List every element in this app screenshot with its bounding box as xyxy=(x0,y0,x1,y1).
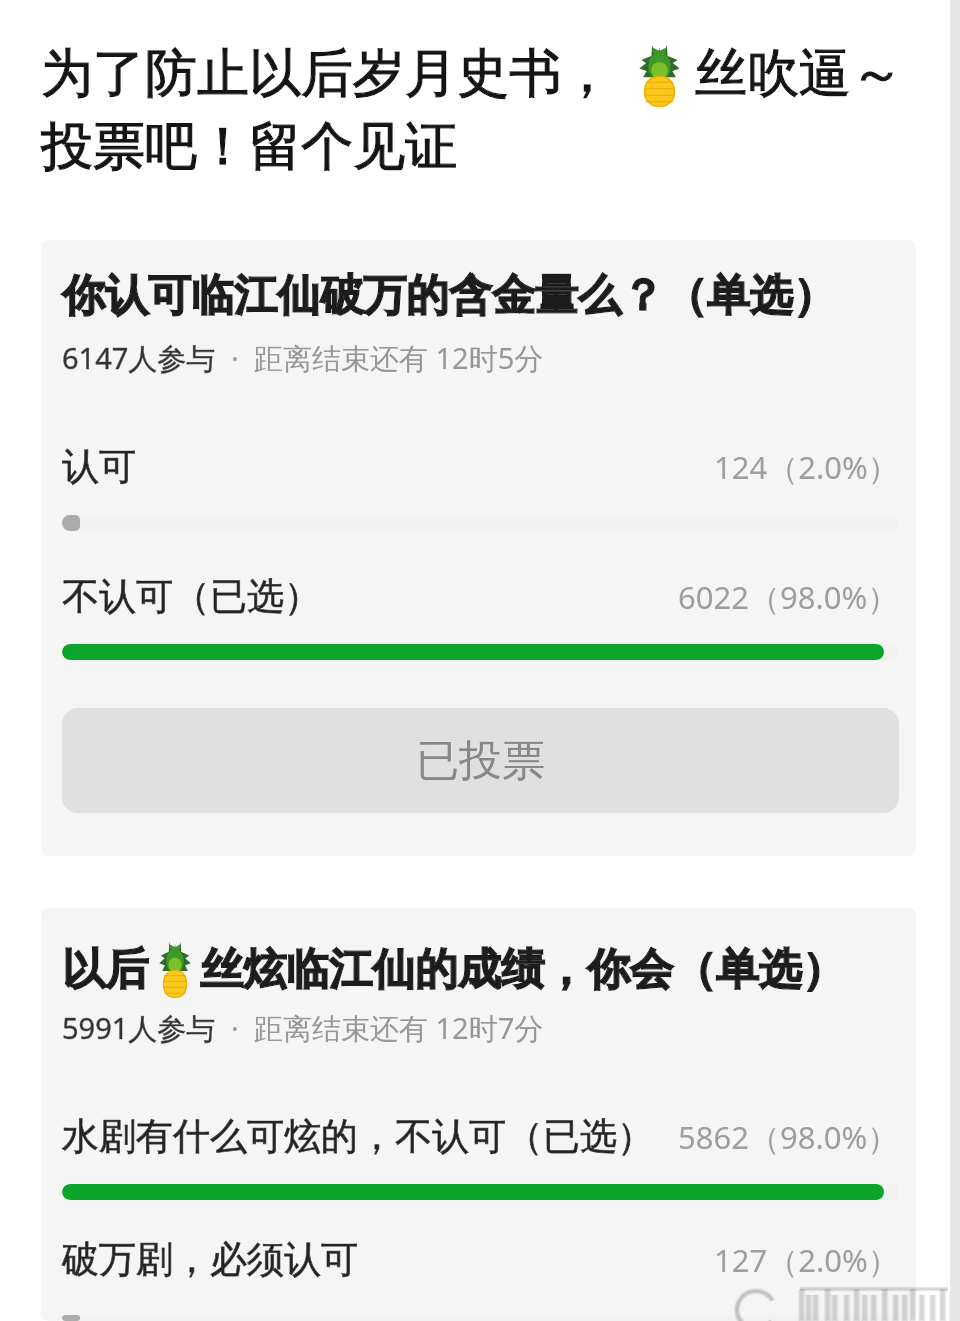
staticText: 6147人参与 xyxy=(62,338,216,378)
staticText: 不认可（已选） xyxy=(62,573,321,620)
staticText: 丝炫临江仙的成绩，你会（单选） xyxy=(200,943,845,997)
staticText: 丝炫临江仙的成绩，你会（单选） xyxy=(200,943,845,997)
staticText: 以后 xyxy=(62,943,148,997)
button[interactable]: 水剧有什么可炫的，不认可（已选） xyxy=(62,1113,899,1200)
staticText: 以后 xyxy=(62,943,148,997)
staticText: · 距离结束还有 12时5分 xyxy=(216,338,544,378)
button[interactable]: 破万剧，必须认可 xyxy=(62,1236,899,1321)
staticText: 为了防止以后岁月史书， xyxy=(41,41,613,107)
staticText: 6022（98.0%） xyxy=(678,576,899,618)
staticText: 认可 xyxy=(62,443,136,490)
staticText: 丝吹逼～ xyxy=(695,41,903,107)
button[interactable]: 认可 xyxy=(62,443,899,531)
staticText: 水剧有什么可炫的，不认可（已选） xyxy=(62,1113,654,1160)
button[interactable]: 以后 xyxy=(41,908,916,1321)
staticText: 水剧有什么可炫的，不认可（已选） xyxy=(62,1113,654,1160)
staticText: · 距离结束还有 12时7分 xyxy=(216,1008,544,1048)
staticText: 124（2.0%） xyxy=(714,446,899,488)
staticText: 为了防止以后岁月史书， xyxy=(41,41,613,107)
staticText: 5991人参与 xyxy=(62,1008,216,1048)
staticText: 投票吧！留个见证 xyxy=(41,114,457,180)
staticText: 不认可（已选） xyxy=(62,573,321,620)
staticText: 127（2.0%） xyxy=(714,1239,899,1281)
button[interactable]: 你认可临江仙破万的含金量么？（单选） xyxy=(41,240,916,856)
staticText: 已投票 xyxy=(416,734,545,788)
staticText: 5991人参与 xyxy=(62,1008,216,1048)
staticText: 破万剧，必须认可 xyxy=(62,1236,358,1283)
staticText: 5862（98.0%） xyxy=(678,1116,899,1158)
staticText: 你认可临江仙破万的含金量么？（单选） xyxy=(62,269,836,323)
staticText: 投票吧！留个见证 xyxy=(41,114,457,180)
staticText: 认可 xyxy=(62,443,136,490)
staticText: 6147人参与 xyxy=(62,338,216,378)
button[interactable]: 不认可（已选） xyxy=(62,573,899,660)
button[interactable]: 已投票 xyxy=(62,708,899,813)
staticText: 你认可临江仙破万的含金量么？（单选） xyxy=(62,269,836,323)
staticText: 丝吹逼～ xyxy=(695,41,903,107)
staticText: 破万剧，必须认可 xyxy=(62,1236,358,1283)
